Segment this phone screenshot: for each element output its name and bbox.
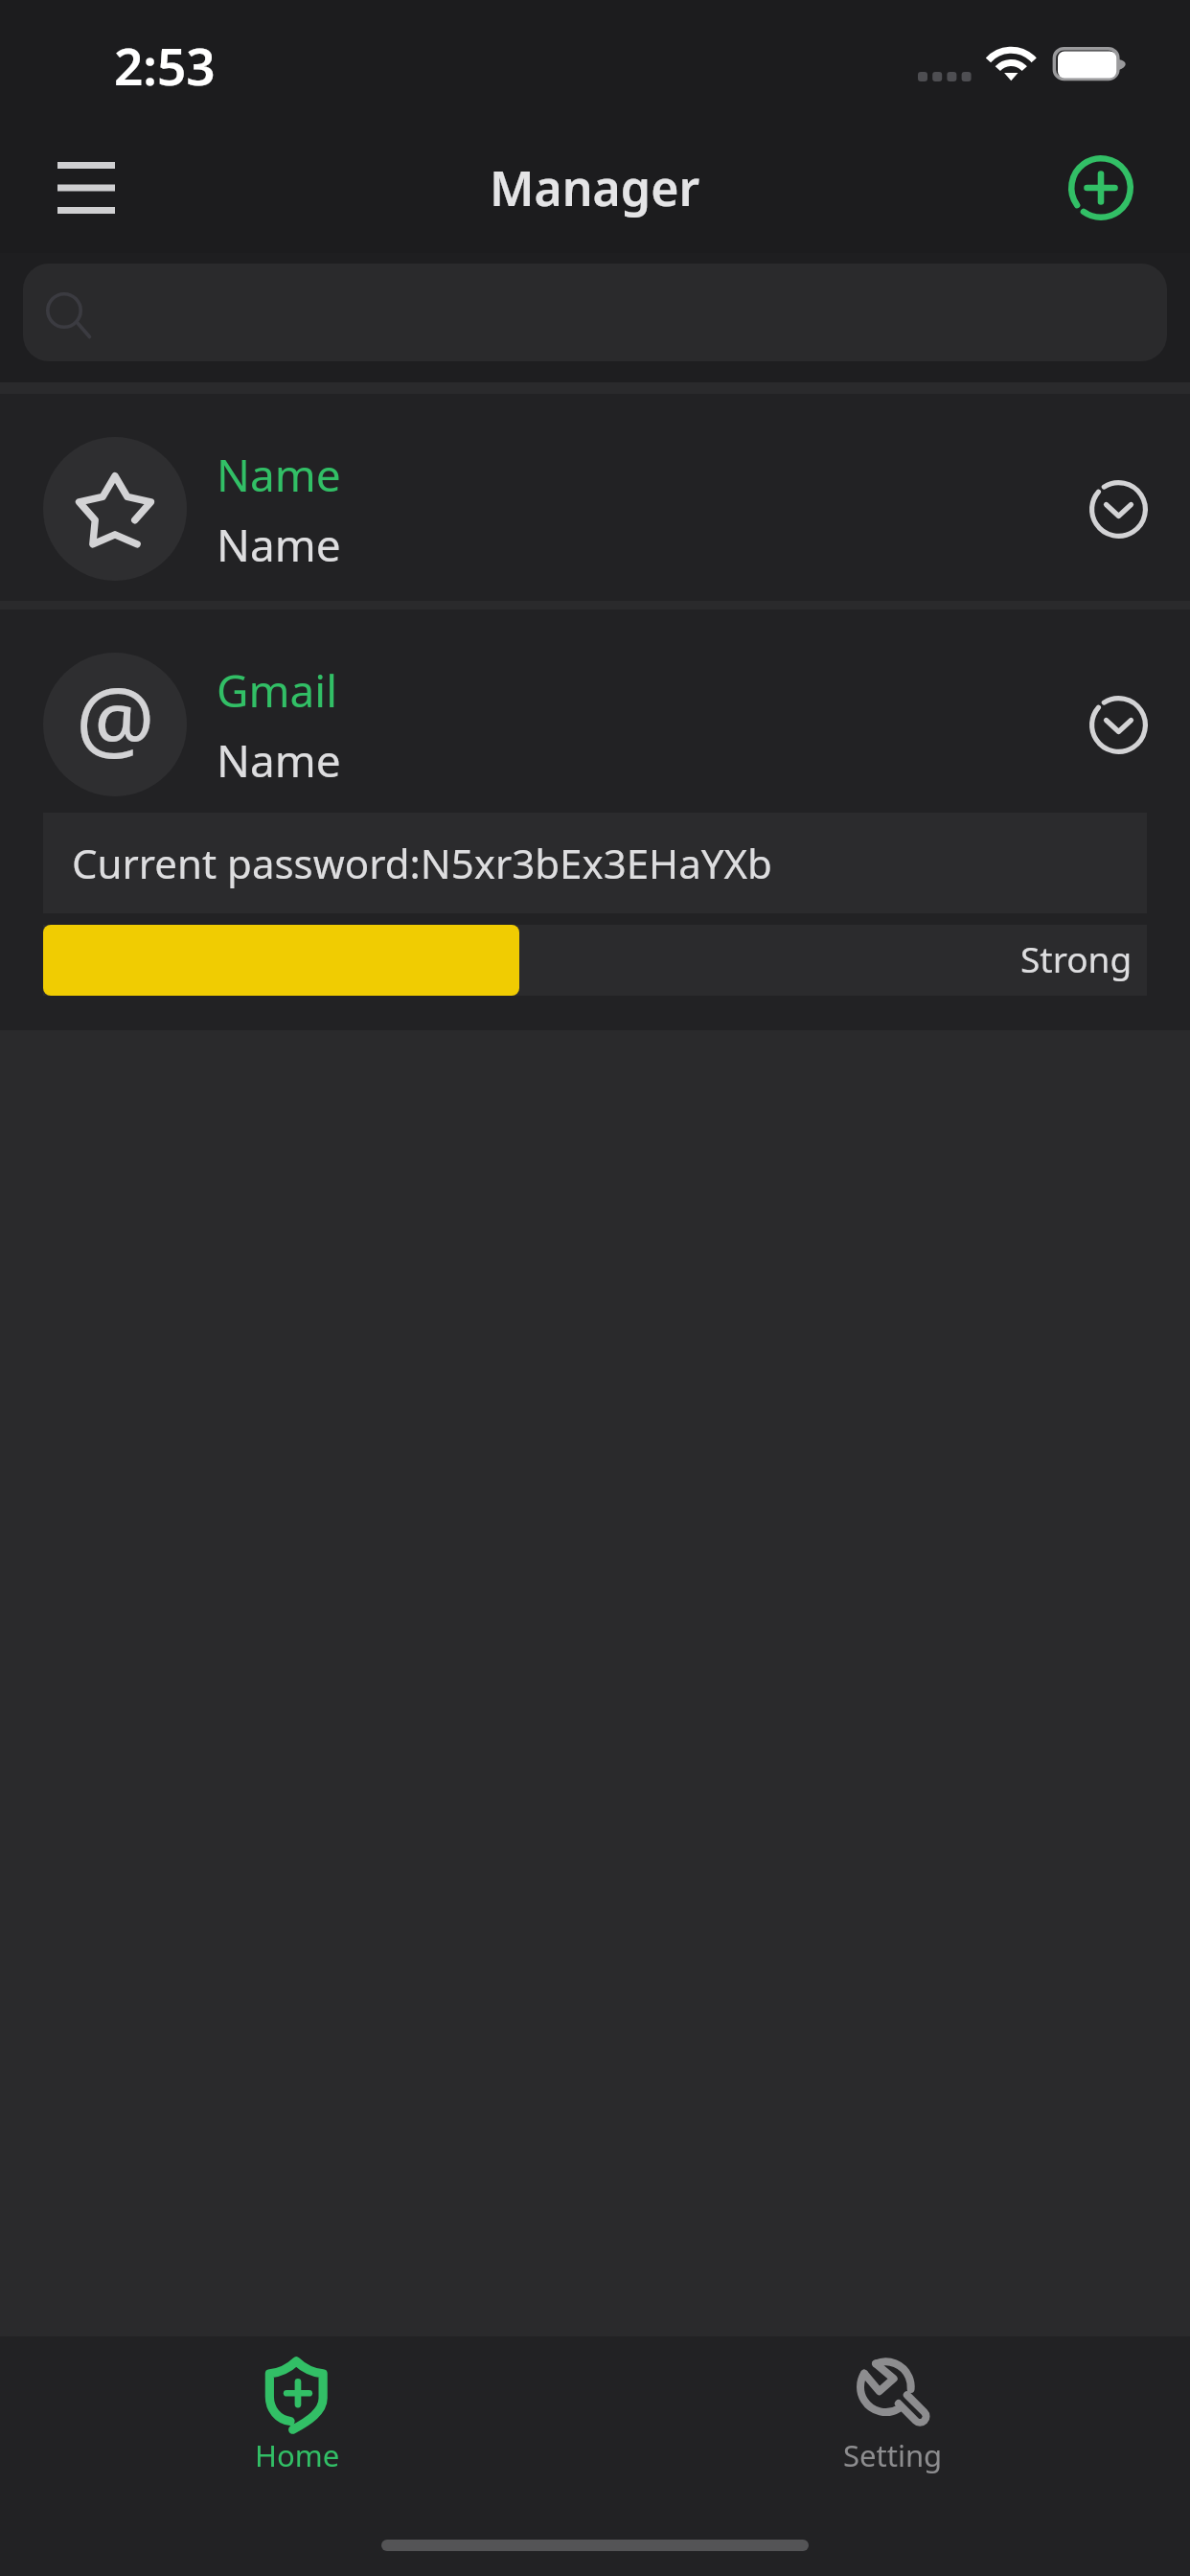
staticText: Manager [490, 155, 700, 220]
button[interactable]: Expand [1068, 459, 1168, 559]
button[interactable]: Expand [1068, 675, 1168, 774]
staticText: Current password:N5xr3bEx3EHaYXb [72, 836, 772, 890]
staticText: Strong [1020, 934, 1133, 982]
button[interactable]: @ [0, 609, 1190, 813]
button[interactable]: Home [0, 2336, 595, 2475]
staticText: @ [76, 657, 155, 777]
button[interactable]: Menu [29, 135, 144, 241]
button[interactable]: Setting [595, 2336, 1190, 2475]
button[interactable]: Add [1052, 139, 1149, 236]
staticText: Name [217, 515, 341, 575]
staticText: 2:53 [114, 31, 216, 100]
staticText: Setting [843, 2435, 943, 2475]
staticText: Name [217, 730, 341, 791]
staticText: Home [255, 2435, 340, 2475]
button[interactable]: Name [0, 394, 1190, 601]
staticText: Name [217, 445, 341, 505]
staticText: Gmail [217, 660, 338, 721]
